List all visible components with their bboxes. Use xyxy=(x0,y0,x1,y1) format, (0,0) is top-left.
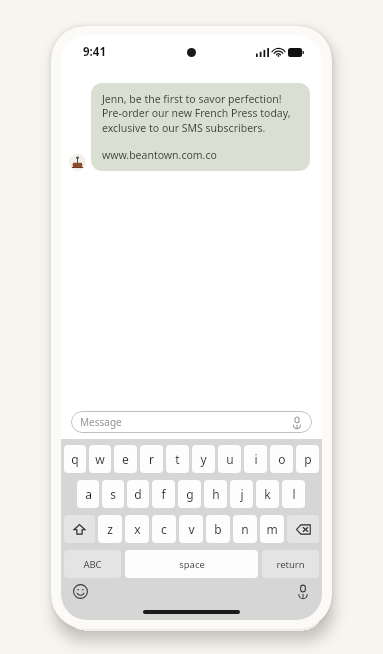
staticText: u xyxy=(226,451,234,467)
staticText: n xyxy=(241,521,249,537)
button[interactable]: o xyxy=(270,445,293,473)
button[interactable]: m xyxy=(260,515,284,543)
button[interactable]: u xyxy=(218,445,241,473)
button[interactable]: y xyxy=(192,445,215,473)
button[interactable]: Shift xyxy=(64,515,95,543)
staticText: z xyxy=(107,521,113,537)
staticText: ABC xyxy=(83,558,102,571)
staticText: c xyxy=(161,521,167,537)
button[interactable]: f xyxy=(152,480,175,508)
button[interactable]: j xyxy=(230,480,253,508)
staticText: s xyxy=(110,486,116,502)
staticText: j xyxy=(240,486,244,502)
button[interactable]: Backspace xyxy=(287,515,319,543)
button[interactable]: b xyxy=(206,515,230,543)
staticText: 9:41 xyxy=(83,44,106,60)
button[interactable]: Contact avatar xyxy=(69,154,86,171)
button[interactable]: l xyxy=(282,480,305,508)
button[interactable]: Emoji xyxy=(73,584,88,599)
button[interactable]: c xyxy=(152,515,176,543)
button[interactable]: h xyxy=(204,480,227,508)
button[interactable]: r xyxy=(140,445,163,473)
button[interactable]: x xyxy=(125,515,149,543)
button[interactable]: k xyxy=(256,480,279,508)
staticText: y xyxy=(200,451,207,467)
staticText: l xyxy=(292,486,296,502)
staticText: g xyxy=(186,486,194,502)
staticText: return xyxy=(276,558,305,571)
staticText: d xyxy=(134,486,142,502)
button[interactable]: e xyxy=(114,445,137,473)
button[interactable]: Message xyxy=(71,411,312,433)
staticText: w xyxy=(95,451,105,467)
button[interactable]: d xyxy=(127,480,149,508)
button[interactable]: q xyxy=(64,445,86,473)
staticText: a xyxy=(85,486,92,502)
staticText: b xyxy=(214,521,222,537)
staticText: o xyxy=(278,451,286,467)
staticText: t xyxy=(175,451,180,467)
staticText: x xyxy=(134,521,141,537)
staticText: Message xyxy=(80,415,291,429)
button[interactable]: n xyxy=(233,515,257,543)
button[interactable]: v xyxy=(179,515,203,543)
button[interactable]: s xyxy=(102,480,124,508)
staticText: f xyxy=(161,486,166,502)
staticText: v xyxy=(188,521,195,537)
staticText: q xyxy=(71,451,79,467)
staticText: p xyxy=(304,451,312,467)
staticText: h xyxy=(212,486,220,502)
button[interactable]: Dictation xyxy=(296,584,310,598)
button[interactable]: space xyxy=(125,550,258,578)
button[interactable]: Jenn, be the first to savor perfection! … xyxy=(91,83,310,171)
button[interactable]: i xyxy=(244,445,267,473)
staticText: Jenn, be the first to savor perfection! … xyxy=(102,92,299,135)
button[interactable]: www.beantown.com.co xyxy=(102,148,217,162)
button[interactable]: return xyxy=(262,550,319,578)
button[interactable]: z xyxy=(98,515,122,543)
button[interactable]: a xyxy=(77,480,99,508)
button[interactable]: Voice input xyxy=(291,416,303,428)
button[interactable]: w xyxy=(89,445,111,473)
staticText: r xyxy=(149,451,154,467)
staticText: e xyxy=(122,451,129,467)
button[interactable]: g xyxy=(178,480,201,508)
staticText: space xyxy=(179,558,205,571)
button[interactable]: t xyxy=(166,445,189,473)
staticText: i xyxy=(254,451,258,467)
staticText: k xyxy=(264,486,271,502)
staticText: m xyxy=(266,521,278,537)
button[interactable]: p xyxy=(296,445,319,473)
button[interactable]: ABC xyxy=(64,550,121,578)
